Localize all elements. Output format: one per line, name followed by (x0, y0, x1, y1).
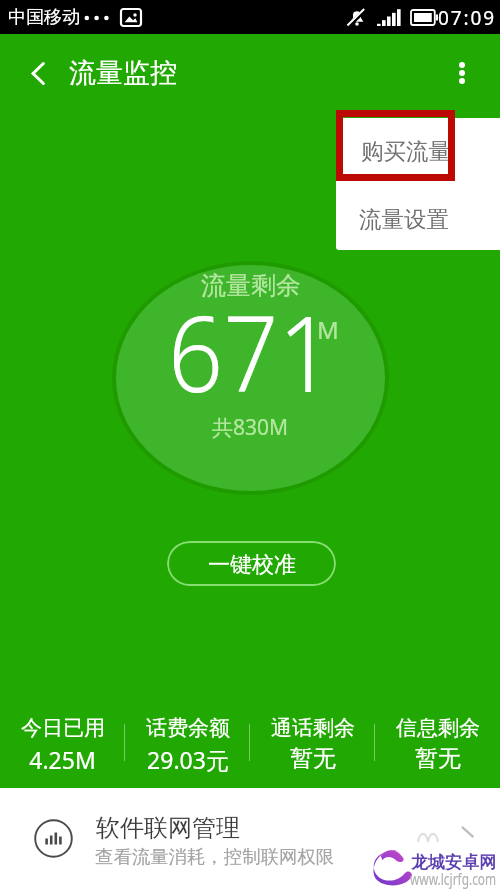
staticText: 今日已用 (21, 715, 105, 741)
staticText: 4.25M (29, 744, 96, 775)
staticText: 流量监控 (69, 56, 177, 90)
staticText: 流量设置 (359, 205, 449, 233)
staticText: 流量剩余 (201, 270, 301, 301)
other: Open (458, 824, 480, 848)
staticText: 龙城安卓网 (411, 852, 496, 873)
staticText: 07:09 (438, 5, 497, 31)
button[interactable]: 信息剩余 (375, 710, 500, 790)
button[interactable]: 一键校准 (167, 541, 336, 586)
staticText: 671 (168, 280, 334, 423)
staticText: 查看流量消耗，控制联网权限 (95, 845, 335, 868)
staticText: 一键校准 (208, 551, 296, 579)
staticText: 话费余额 (146, 715, 230, 741)
button[interactable]: 今日已用 (0, 710, 125, 790)
button[interactable]: Back (13, 48, 63, 98)
button[interactable]: 购买流量 (336, 118, 500, 184)
staticText: 通话剩余 (271, 715, 355, 741)
staticText: 软件联网管理 (96, 813, 240, 843)
staticText: 购买流量 (361, 137, 451, 165)
staticText: 中国移动 (8, 6, 80, 29)
button[interactable]: 通话剩余 (250, 710, 375, 790)
button[interactable]: 流量设置 (336, 186, 500, 250)
button[interactable]: More options (437, 48, 487, 98)
staticText: 暂无 (415, 744, 461, 773)
staticText: www.lcjrfg.com (410, 867, 497, 889)
staticText: 信息剩余 (396, 715, 480, 741)
button[interactable]: 软件联网管理 (0, 788, 500, 889)
staticText: M (317, 313, 339, 346)
button[interactable]: 话费余额 (125, 710, 250, 790)
staticText: 暂无 (290, 744, 336, 773)
staticText: 共830M (212, 413, 289, 442)
staticText: 29.03元 (147, 744, 229, 775)
